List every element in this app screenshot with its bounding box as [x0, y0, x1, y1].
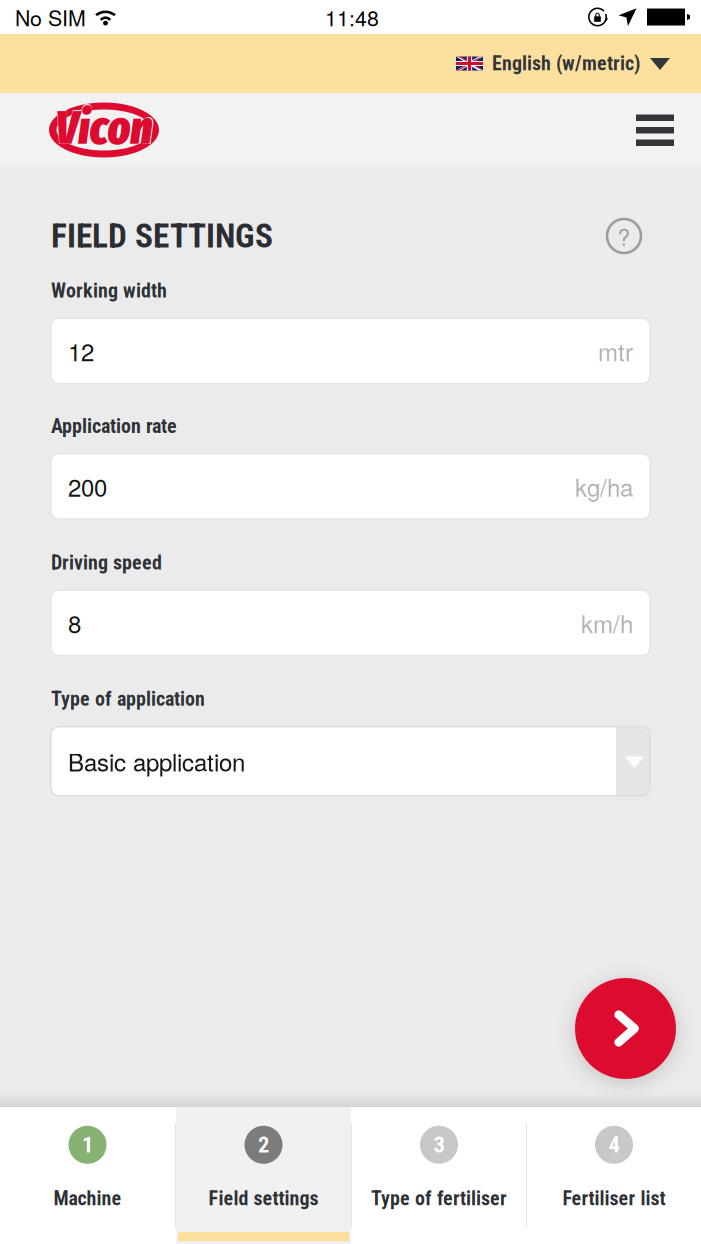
staticText: km/h — [581, 606, 633, 640]
staticText: 4 — [608, 1131, 619, 1158]
staticText: English (w/metric) — [492, 52, 640, 75]
staticText: 12 — [68, 334, 94, 368]
button[interactable]: Next — [575, 978, 676, 1079]
staticText: kg/ha — [575, 469, 633, 504]
staticText: Fertiliser list — [562, 1187, 665, 1210]
staticText: ? — [617, 220, 630, 252]
staticText: Basic application — [68, 744, 245, 778]
button[interactable]: Menu — [622, 100, 688, 159]
staticText: Working width — [51, 279, 167, 302]
staticText: 2 — [258, 1131, 269, 1158]
staticText: 3 — [433, 1131, 444, 1158]
staticText: Vicon — [55, 100, 152, 156]
staticText: Type of fertiliser — [371, 1187, 507, 1210]
staticText: FIELD SETTINGS — [51, 216, 273, 256]
staticText: 1 — [82, 1131, 93, 1158]
staticText: mtr — [598, 334, 633, 368]
staticText: Application rate — [51, 414, 177, 438]
button[interactable]: 2 — [176, 1107, 351, 1244]
button[interactable]: 3 — [352, 1107, 526, 1244]
staticText: 11:48 — [325, 2, 379, 32]
button[interactable]: English (w/metric) — [0, 34, 701, 93]
button[interactable]: Help — [598, 210, 650, 262]
button[interactable]: Basic application — [51, 727, 650, 796]
staticText: Machine — [53, 1187, 121, 1210]
staticText: Field settings — [208, 1187, 318, 1210]
staticText: Vicon — [55, 99, 153, 157]
button[interactable]: 1 — [0, 1107, 175, 1244]
staticText: No SIM — [15, 2, 86, 32]
staticText: Type of application — [51, 687, 205, 711]
staticText: Driving speed — [51, 551, 162, 574]
staticText: 200 — [68, 469, 107, 504]
button[interactable]: 4 — [527, 1107, 701, 1244]
staticText: 8 — [68, 606, 81, 640]
